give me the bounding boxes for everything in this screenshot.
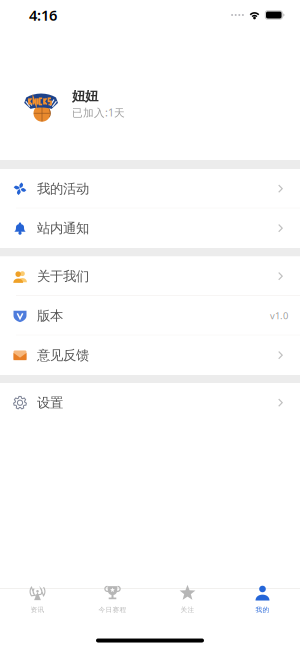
staticText: 资讯 xyxy=(30,606,44,614)
staticText: v1.0 xyxy=(270,310,288,322)
button[interactable]: 版本 xyxy=(0,296,300,335)
button[interactable]: 关注 xyxy=(150,580,225,640)
button[interactable]: 我的 xyxy=(225,580,300,640)
button[interactable]: 关于我们 xyxy=(0,256,300,296)
staticText: 关注 xyxy=(180,606,194,614)
staticText: 关于我们 xyxy=(37,268,89,284)
staticText: 我的 xyxy=(255,606,269,614)
button[interactable]: 站内通知 xyxy=(0,208,300,248)
staticText: 4:16 xyxy=(29,5,57,25)
staticText: 今日赛程 xyxy=(98,606,126,614)
staticText: 意见反馈 xyxy=(37,347,89,363)
button[interactable]: 资讯 xyxy=(0,580,75,640)
button[interactable]: 妞妞 xyxy=(0,30,300,160)
button[interactable]: 意见反馈 xyxy=(0,335,300,375)
staticText: 站内通知 xyxy=(37,220,89,236)
staticText: 已加入:1天 xyxy=(72,105,125,120)
button[interactable]: 我的活动 xyxy=(0,169,300,208)
staticText: 版本 xyxy=(37,308,63,324)
staticText: 我的活动 xyxy=(37,181,89,197)
button[interactable]: 设置 xyxy=(0,383,300,422)
staticText: 妞妞 xyxy=(72,88,98,104)
button[interactable]: 今日赛程 xyxy=(75,580,150,640)
staticText: 设置 xyxy=(37,395,63,411)
